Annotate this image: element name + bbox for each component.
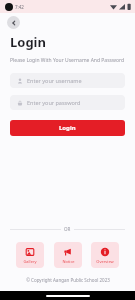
staticText: Gallery xyxy=(23,259,37,264)
button[interactable]: Overview xyxy=(91,242,119,268)
staticText: 7:42 xyxy=(15,4,24,10)
staticText: Login xyxy=(59,124,76,132)
staticText: Enter your username xyxy=(27,77,82,84)
staticText: © Copyright Aangan Public School 2023 xyxy=(26,277,110,283)
button[interactable]: Login xyxy=(10,120,125,136)
button[interactable]: Enter your username xyxy=(10,73,125,88)
staticText: Login xyxy=(10,33,46,51)
button[interactable]: Notice xyxy=(54,242,82,268)
staticText: Please Login With Your Username And Pass… xyxy=(10,57,124,64)
button[interactable]: Back xyxy=(7,16,20,29)
button[interactable]: Enter your password xyxy=(10,95,125,110)
staticText: OR xyxy=(64,226,71,232)
staticText: Notice xyxy=(62,259,75,264)
staticText: Enter your password xyxy=(27,99,81,106)
button[interactable]: Gallery xyxy=(16,242,44,268)
staticText: Overview xyxy=(96,259,114,264)
